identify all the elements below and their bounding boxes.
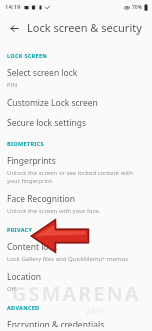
staticText: Fingerprints <box>7 155 56 167</box>
staticText: Content lock <box>7 241 58 253</box>
staticText: PRIVACY <box>7 226 33 233</box>
staticText: LOCK SCREEN <box>7 52 48 59</box>
staticText: Lock screen & security <box>27 20 142 35</box>
staticText: Encryption & credentials <box>7 319 105 327</box>
staticText: Face Recognition <box>7 193 75 205</box>
staticText: Off <box>7 285 16 293</box>
staticText: Unlock the screen with your face. <box>7 207 101 215</box>
staticText: 70% <box>132 4 142 11</box>
button[interactable]: Encryption & credentials <box>0 315 152 331</box>
button[interactable]: Back <box>6 20 22 36</box>
button[interactable]: Content lock <box>0 237 152 267</box>
staticText: Lock Gallery files and QuickMemo+ memos <box>7 255 129 263</box>
staticText: ADVANCED <box>7 304 40 311</box>
staticText: 2019 <box>86 307 107 317</box>
button[interactable]: Secure lock settings <box>0 113 152 133</box>
button[interactable]: Select screen lock <box>0 63 152 93</box>
staticText: BIOMETRICS <box>7 140 44 147</box>
staticText: PIN <box>7 81 18 89</box>
staticText: 14:19 <box>5 3 21 11</box>
staticText: Customize Lock screen <box>7 97 98 109</box>
staticText: GSMARENA <box>12 280 141 307</box>
button[interactable]: Face Recognition <box>0 189 152 219</box>
staticText: Unlock the screen or see locked content … <box>7 169 144 185</box>
staticText: Select screen lock <box>7 67 78 79</box>
staticText: Secure lock settings <box>7 117 87 129</box>
button[interactable]: Location <box>0 267 152 297</box>
staticText: Location <box>7 271 42 283</box>
button[interactable]: Customize Lock screen <box>0 93 152 113</box>
button[interactable]: Fingerprints <box>0 151 152 189</box>
